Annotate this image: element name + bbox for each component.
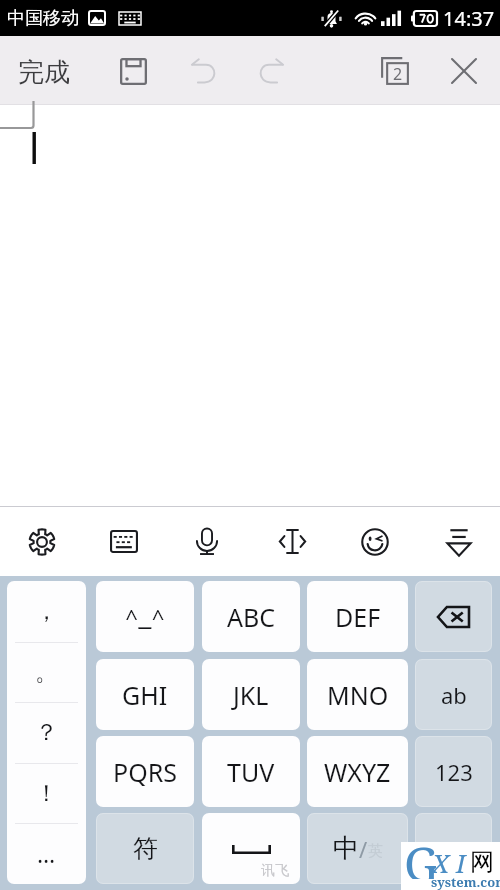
staticText: … [37, 838, 56, 869]
staticText: ， [35, 597, 58, 626]
button[interactable]: 。 [7, 642, 86, 703]
staticText: JKL [233, 678, 269, 712]
staticText: MNO [327, 678, 389, 712]
button[interactable]: Move cursor [259, 507, 325, 576]
staticText: ^_^ [125, 602, 165, 632]
button[interactable]: Keyboard layout [91, 507, 157, 576]
staticText: ？ [35, 718, 58, 747]
button[interactable]: 123 [415, 736, 492, 807]
button[interactable]: ， [7, 581, 86, 642]
staticText: TUV [227, 755, 275, 789]
staticText: 。 [35, 658, 58, 687]
staticText: PQRS [113, 755, 177, 789]
staticText: X I [432, 845, 466, 880]
staticText: DEF [335, 600, 381, 634]
staticText: system.com [431, 873, 500, 890]
button[interactable]: 完成 [9, 48, 79, 97]
staticText: 英 [368, 842, 383, 861]
button[interactable]: DEF [307, 581, 408, 652]
button[interactable]: WXYZ [307, 736, 408, 807]
staticText: ！ [35, 779, 58, 808]
staticText: 符 [133, 833, 158, 864]
button[interactable]: Redo [246, 45, 298, 97]
button[interactable]: Close [438, 45, 490, 97]
staticText: ABC [227, 600, 276, 634]
staticText: WXYZ [324, 755, 391, 789]
staticText: 123 [435, 757, 473, 787]
button[interactable]: Voice input [174, 507, 240, 576]
button[interactable]: TUV [202, 736, 300, 807]
button[interactable]: Hide keyboard [426, 507, 492, 576]
staticText: G [404, 831, 436, 879]
button[interactable]: Save [107, 45, 159, 97]
button[interactable]: Backspace [415, 581, 492, 652]
button[interactable] [415, 813, 492, 884]
staticText: 完成 [18, 56, 70, 89]
staticText: 中国移动 [7, 7, 79, 30]
button[interactable]: GHI [96, 659, 194, 730]
staticText: 中 [333, 832, 359, 865]
staticText: 网 [470, 847, 494, 877]
button[interactable]: MNO [307, 659, 408, 730]
button[interactable]: ！ [7, 763, 86, 824]
button[interactable]: Undo [177, 45, 229, 97]
button[interactable]: PQRS [96, 736, 194, 807]
button[interactable]: ？ [7, 702, 86, 763]
staticText: 14:37 [443, 5, 495, 32]
button[interactable]: Switch Chinese English [307, 813, 408, 884]
button[interactable] [0, 105, 500, 506]
button[interactable]: Space [202, 813, 300, 884]
button[interactable]: Emoji [342, 507, 408, 576]
button[interactable]: JKL [202, 659, 300, 730]
staticText: 讯飞 [261, 862, 289, 880]
staticText: GHI [122, 678, 168, 712]
button[interactable]: 符 [96, 813, 194, 884]
staticText: / [359, 834, 368, 864]
button[interactable]: ^_^ [96, 581, 194, 652]
button[interactable]: ab [415, 659, 492, 730]
button[interactable]: … [7, 823, 86, 884]
button[interactable]: Pages [369, 45, 421, 97]
button[interactable]: Settings [9, 507, 75, 576]
button[interactable]: ABC [202, 581, 300, 652]
staticText: 2 [393, 63, 403, 85]
staticText: ab [441, 680, 467, 710]
